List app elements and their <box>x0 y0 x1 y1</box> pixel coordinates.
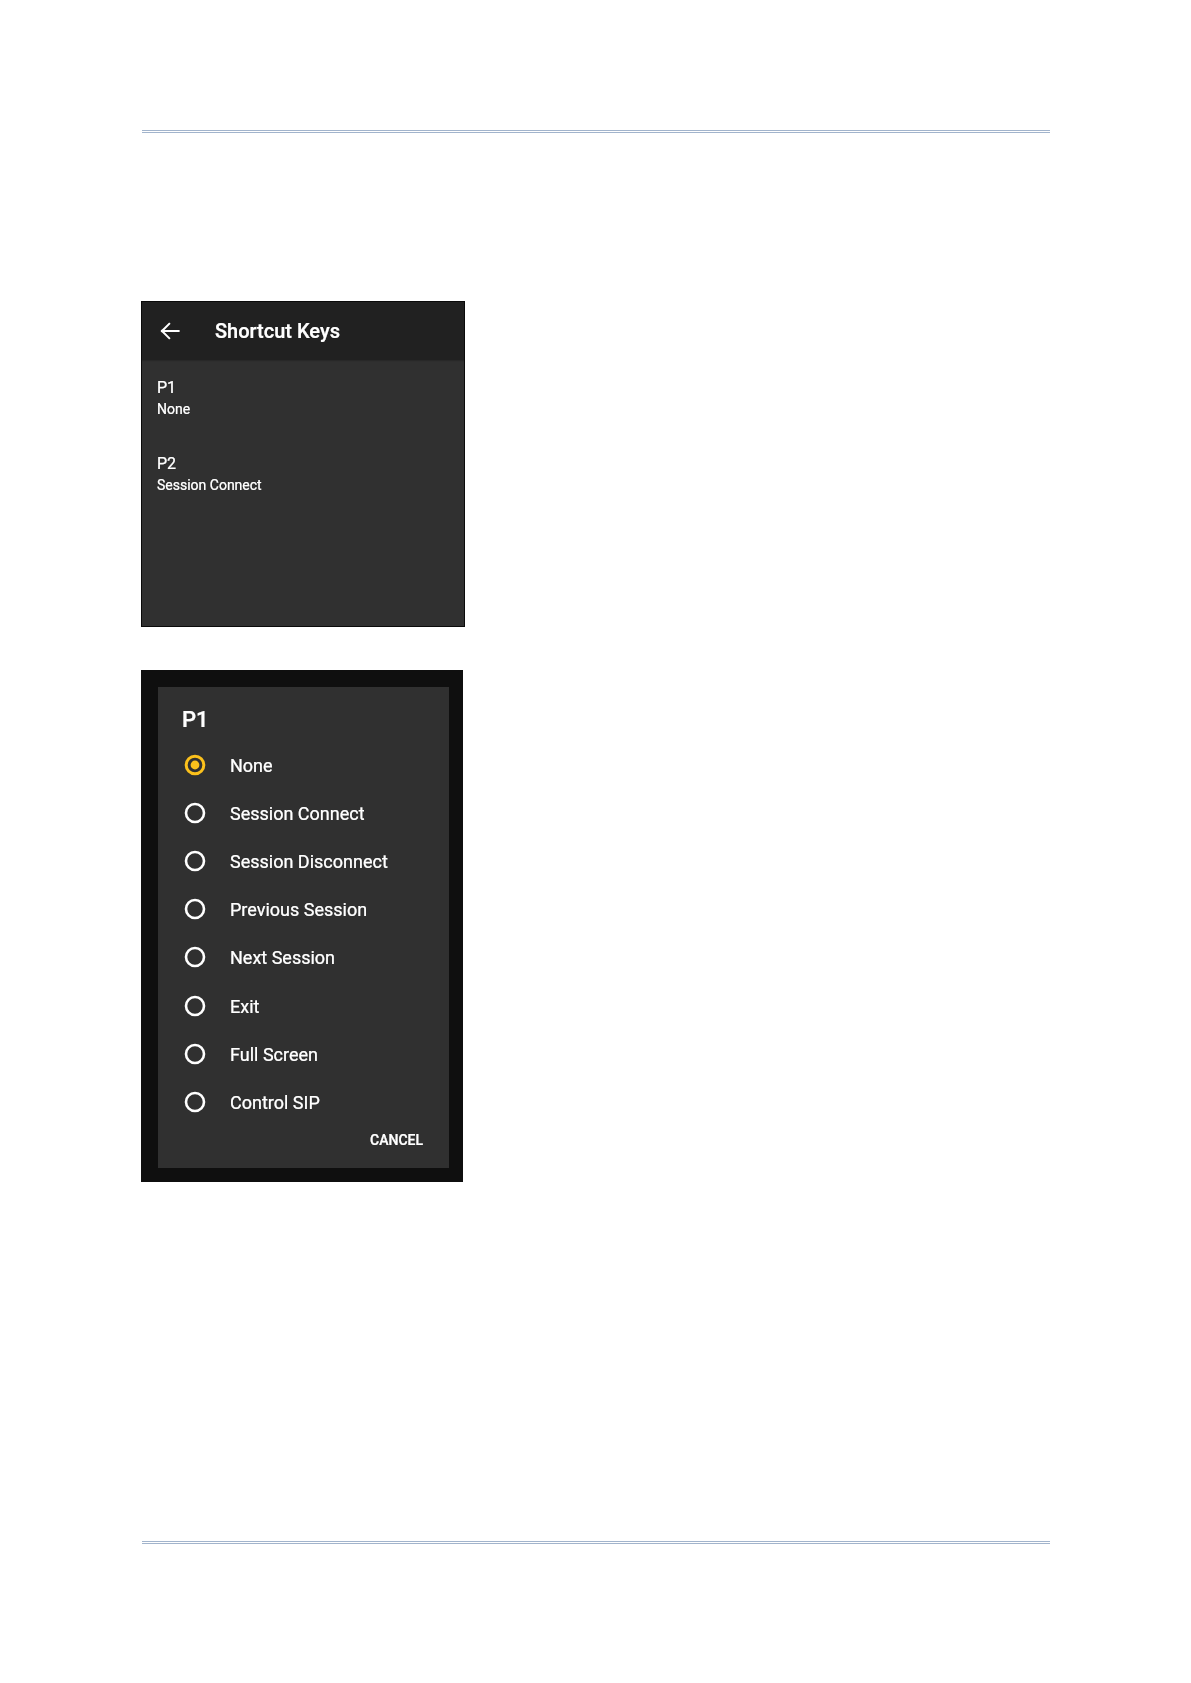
button[interactable]: Next Session <box>158 933 449 981</box>
staticText: Previous Session <box>230 899 368 920</box>
button[interactable]: Control SIP <box>158 1078 449 1126</box>
staticText: None <box>230 755 273 776</box>
button[interactable]: P1 <box>142 364 464 427</box>
button[interactable]: Session Disconnect <box>158 837 449 885</box>
button[interactable]: Navigate up <box>148 309 192 353</box>
button[interactable]: Session Connect <box>158 789 449 837</box>
staticText: Session Connect <box>230 803 365 824</box>
staticText: P1 <box>182 707 209 733</box>
button[interactable]: Previous Session <box>158 885 449 933</box>
staticText: Full Screen <box>230 1044 318 1065</box>
staticText: Shortcut Keys <box>215 319 341 342</box>
staticText: Control SIP <box>230 1092 320 1113</box>
staticText: P1 <box>157 378 177 397</box>
button[interactable]: Full Screen <box>158 1030 449 1078</box>
button[interactable]: Exit <box>158 982 449 1030</box>
staticText: P2 <box>157 454 177 473</box>
button[interactable]: P2 <box>142 440 464 503</box>
button[interactable]: None <box>158 741 449 789</box>
button[interactable]: CANCEL <box>361 1124 433 1156</box>
staticText: Next Session <box>230 947 336 968</box>
staticText: Session Connect <box>157 477 262 493</box>
staticText: CANCEL <box>370 1132 424 1148</box>
staticText: None <box>157 401 191 417</box>
staticText: Session Disconnect <box>230 851 388 872</box>
staticText: Exit <box>230 996 260 1017</box>
